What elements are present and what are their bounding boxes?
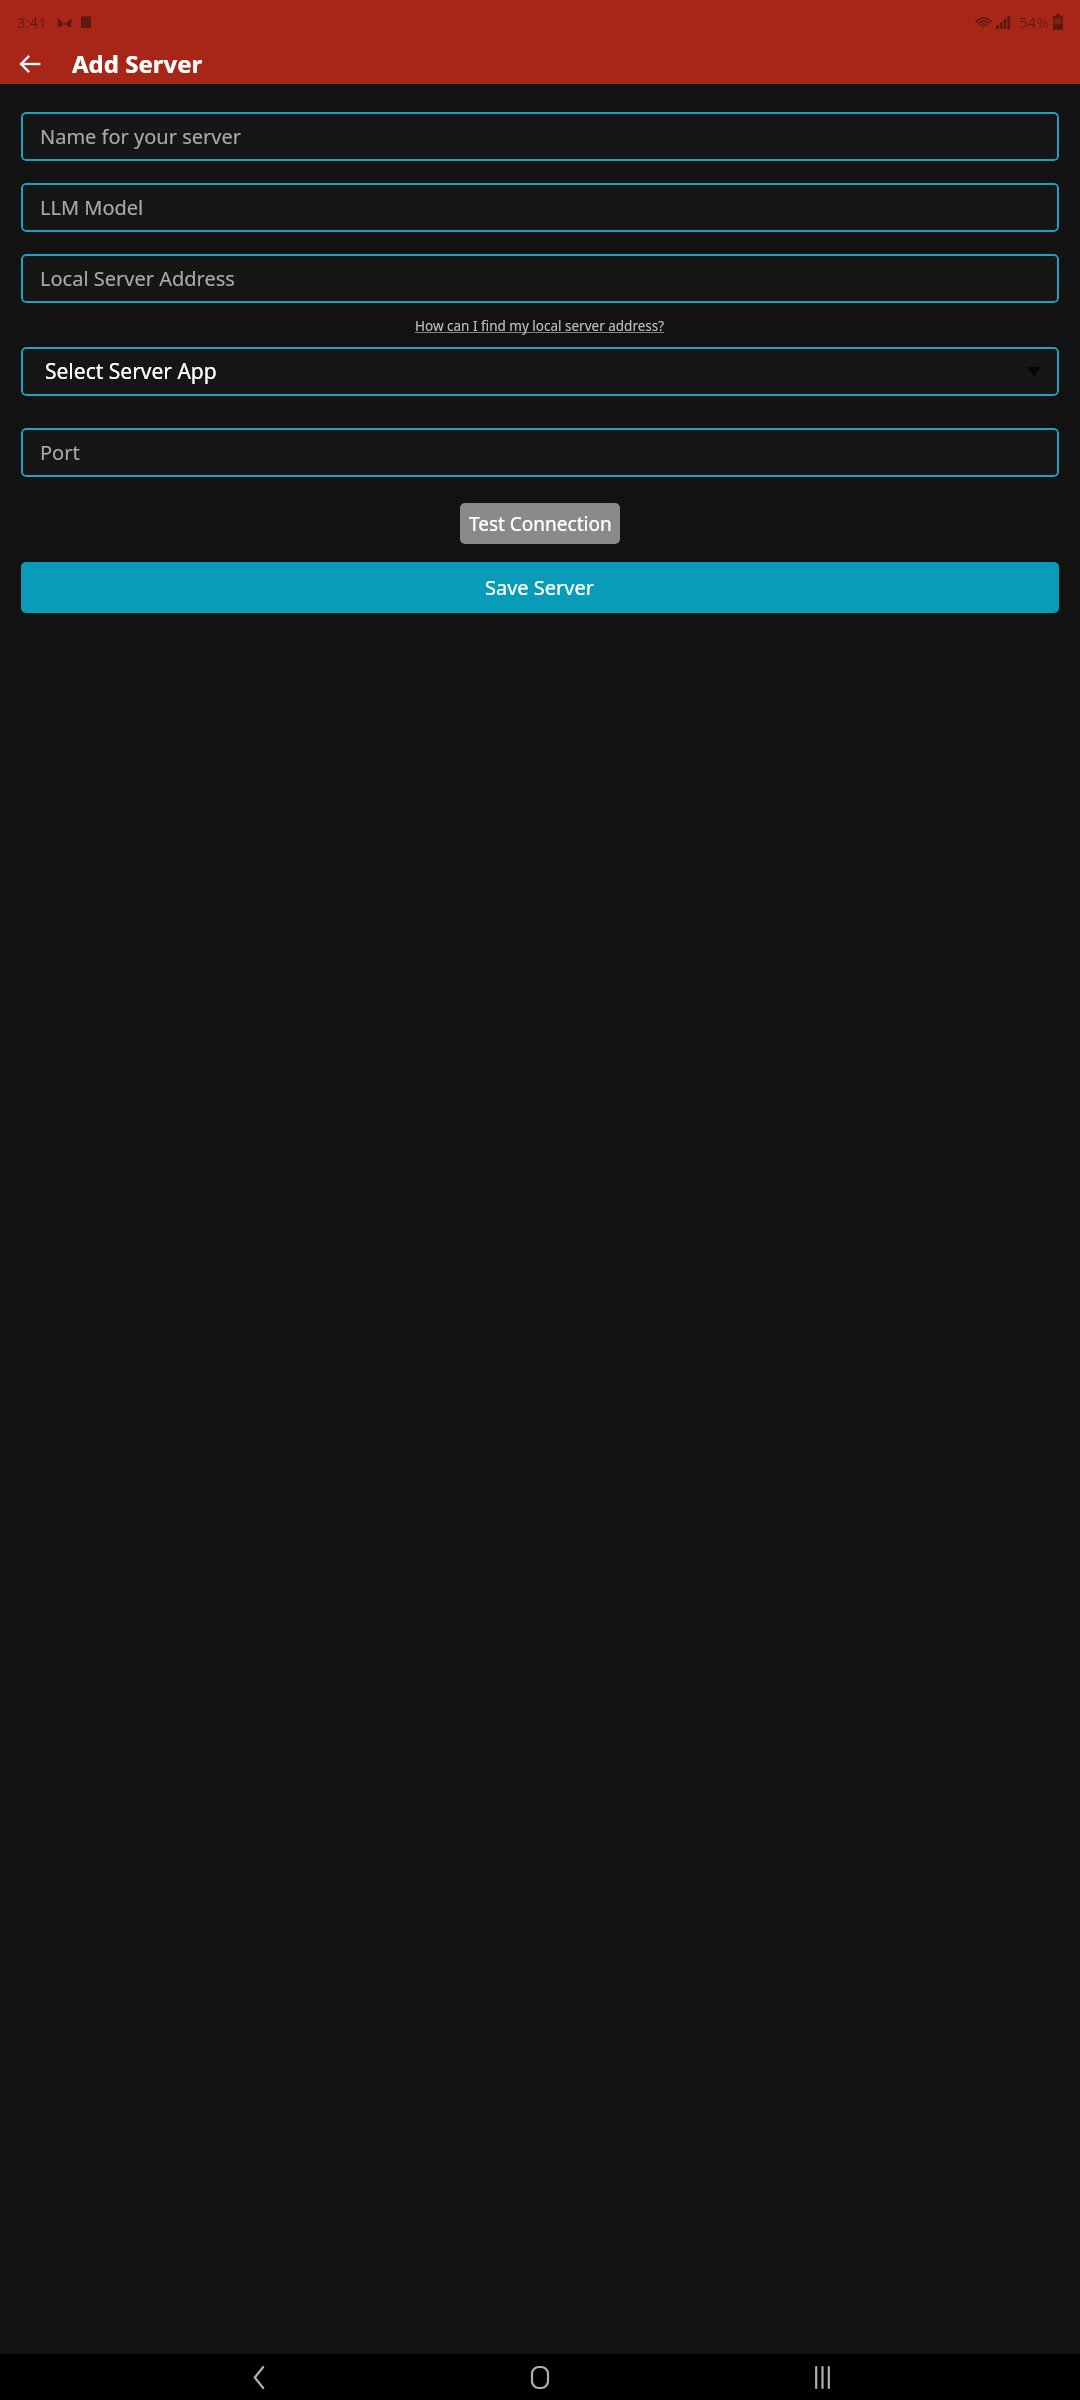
button[interactable]: Back <box>10 44 50 84</box>
staticText: LLM Model <box>40 194 144 221</box>
staticText: 54% <box>1019 12 1049 32</box>
button[interactable]: Local Server Address <box>21 254 1059 303</box>
button[interactable]: Name for your server <box>21 112 1059 161</box>
staticText: Test Connection <box>469 511 612 537</box>
staticText: Add Server <box>72 47 203 80</box>
button[interactable]: Home <box>517 2354 563 2400</box>
staticText: How can I find my local server address? <box>415 317 665 335</box>
staticText: Name for your server <box>40 123 241 150</box>
button[interactable]: Select Server App <box>21 347 1059 396</box>
button[interactable]: Recent apps <box>799 2354 845 2400</box>
button[interactable]: How can I find my local server address? <box>409 313 671 339</box>
staticText: Port <box>40 439 80 466</box>
staticText: Local Server Address <box>40 265 235 292</box>
button[interactable]: Port <box>21 428 1059 477</box>
button[interactable]: Test Connection <box>460 503 620 544</box>
button[interactable]: Back <box>236 2354 282 2400</box>
staticText: Save Server <box>485 574 595 601</box>
button[interactable]: LLM Model <box>21 183 1059 232</box>
button[interactable]: Save Server <box>21 562 1059 613</box>
staticText: Select Server App <box>45 357 217 386</box>
staticText: 3:41 <box>17 12 47 32</box>
